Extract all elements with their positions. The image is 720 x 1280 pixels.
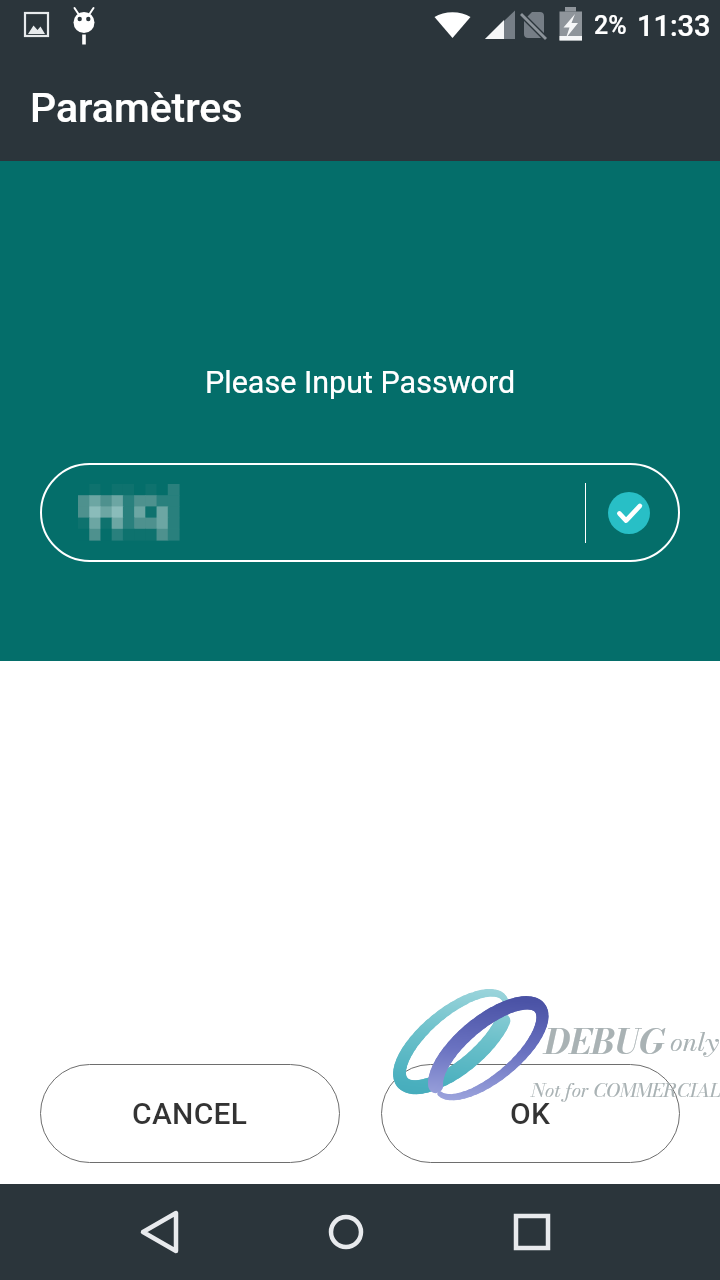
staticText: CANCEL bbox=[132, 1096, 248, 1131]
button[interactable]: Confirm password bbox=[40, 463, 680, 562]
button[interactable]: Home bbox=[322, 1208, 370, 1256]
staticText: Not for COMMERCIAL bbox=[531, 1076, 720, 1105]
staticText: OK bbox=[510, 1096, 551, 1131]
staticText: DEBUG bbox=[544, 1016, 666, 1068]
staticText: Paramètres bbox=[30, 84, 243, 132]
button[interactable]: OK bbox=[381, 1064, 680, 1163]
staticText: 11:33 bbox=[637, 9, 711, 43]
button[interactable]: Confirm password bbox=[608, 492, 650, 534]
staticText: Please Input Password bbox=[205, 365, 516, 401]
button[interactable]: Back bbox=[136, 1208, 184, 1256]
button[interactable]: CANCEL bbox=[40, 1064, 340, 1163]
staticText: 2% bbox=[594, 11, 627, 40]
staticText: only bbox=[670, 1022, 719, 1062]
button[interactable]: Recent apps bbox=[508, 1208, 556, 1256]
